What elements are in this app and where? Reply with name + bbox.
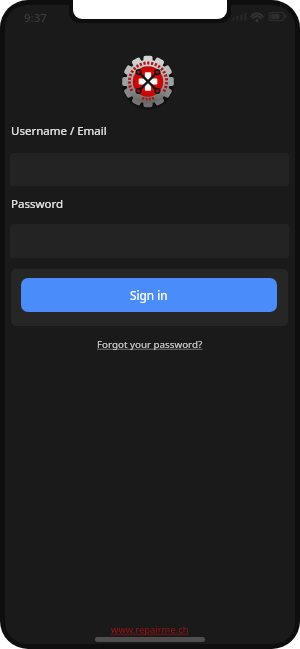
button[interactable]: Forgot your password? <box>97 338 203 351</box>
button[interactable]: www.repairme.ch <box>111 623 189 636</box>
staticText: Password <box>11 196 64 212</box>
staticText: Username / Email <box>11 123 107 139</box>
staticText: Sign in <box>130 287 168 303</box>
button[interactable]: Sign in <box>21 278 277 312</box>
staticText: 9:37 <box>24 10 47 26</box>
